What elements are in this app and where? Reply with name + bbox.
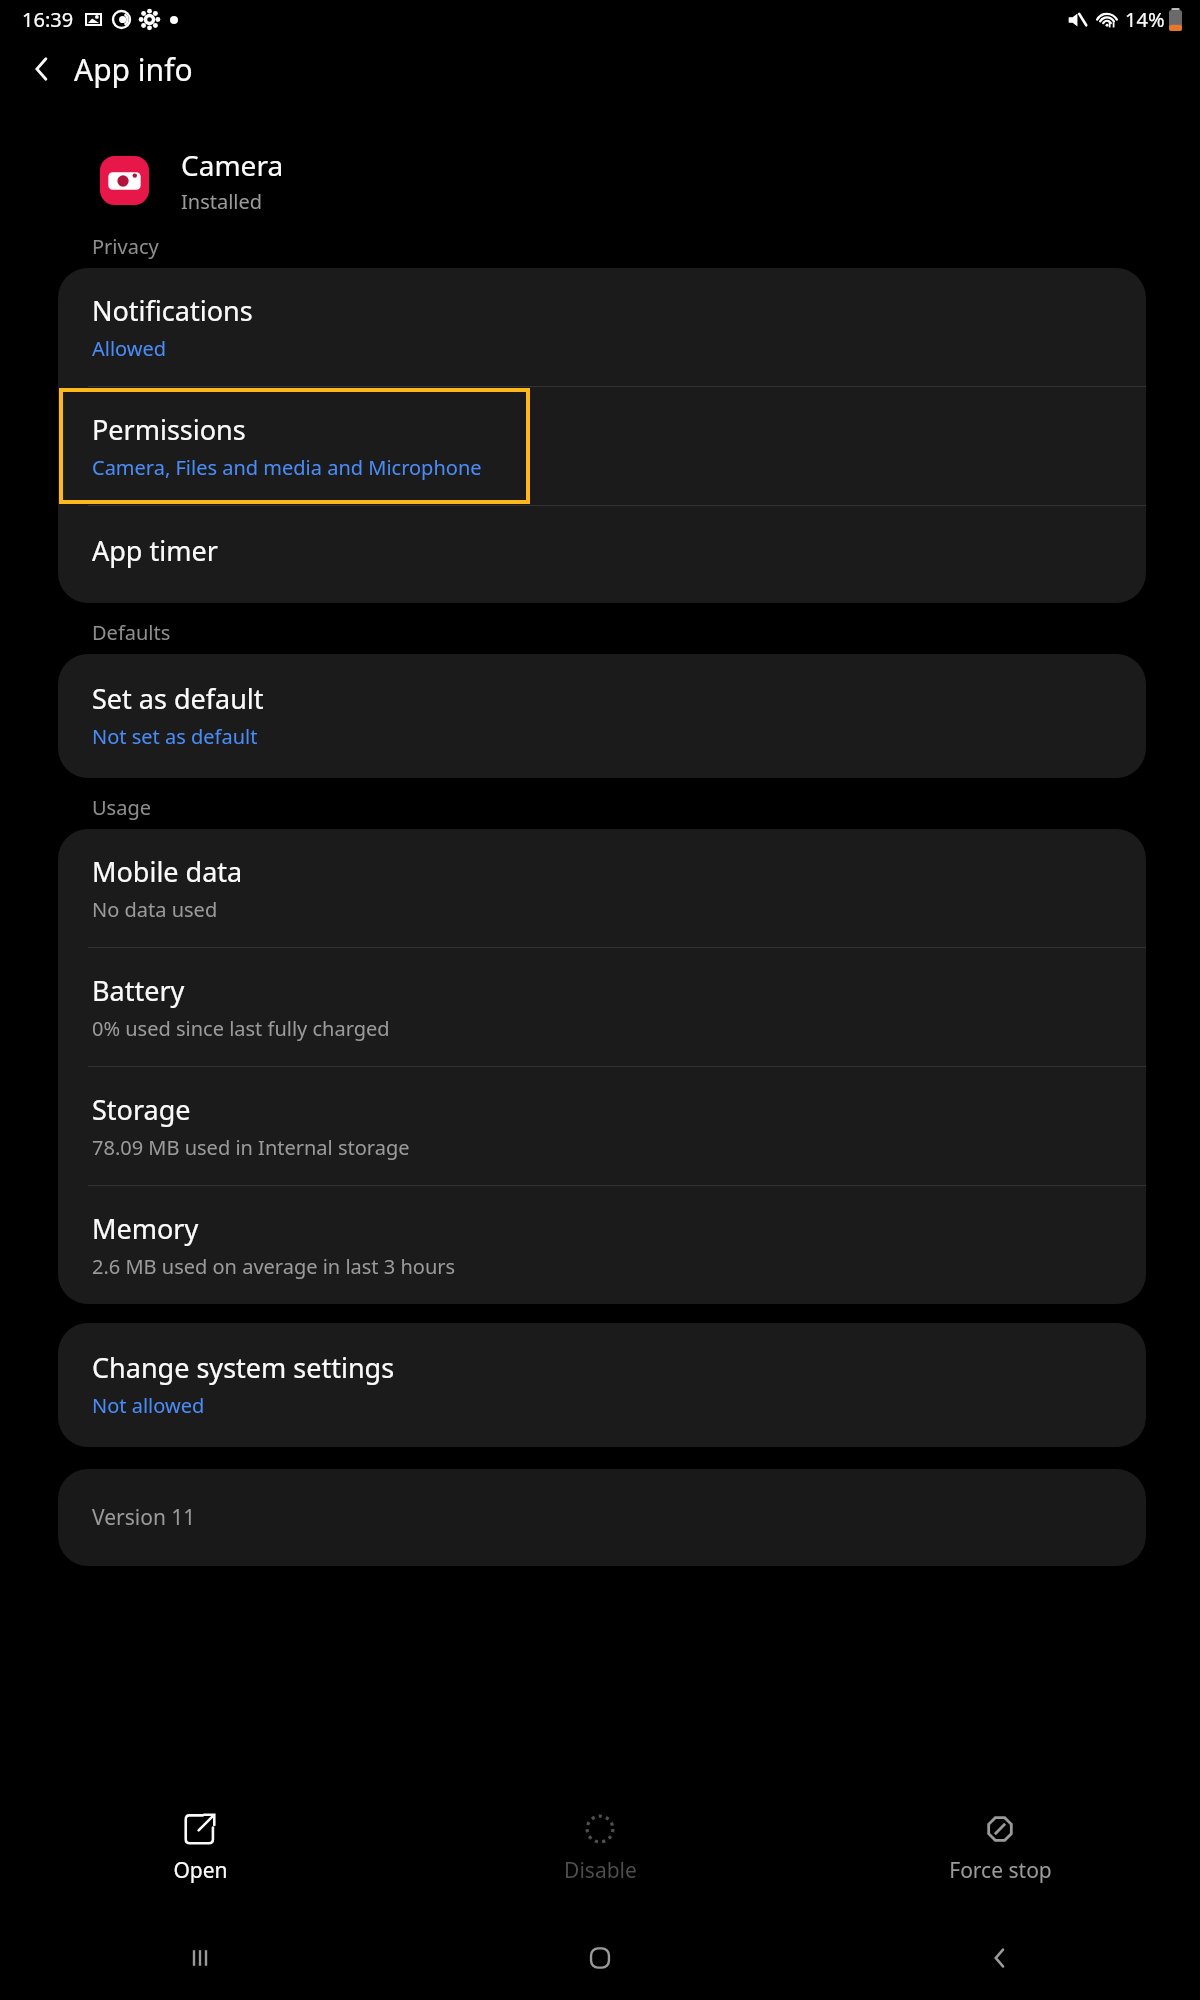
button[interactable]: Back <box>14 41 70 97</box>
button[interactable]: Recent apps <box>0 1916 400 2000</box>
button[interactable]: Permissions <box>58 387 531 505</box>
button[interactable]: Home <box>400 1916 800 2000</box>
staticText: App timer <box>92 532 218 569</box>
button[interactable]: Storage <box>58 1067 1146 1185</box>
staticText: Defaults <box>92 619 171 646</box>
staticText: Set as default <box>92 680 264 717</box>
staticText: Installed <box>181 188 263 215</box>
staticText: Allowed <box>92 335 167 362</box>
staticText: Open <box>173 1856 228 1885</box>
button[interactable]: Notifications <box>58 268 1146 386</box>
staticText: 0% used since last fully charged <box>92 1015 390 1042</box>
button[interactable]: Memory <box>58 1186 1146 1304</box>
staticText: 14% <box>1125 6 1165 33</box>
staticText: Camera, Files and media and Microphone <box>92 454 482 481</box>
staticText: Not set as default <box>92 723 258 750</box>
staticText: Change system settings <box>92 1349 395 1386</box>
staticText: Usage <box>92 794 151 821</box>
staticText: Notifications <box>92 292 253 329</box>
staticText: Not allowed <box>92 1392 205 1419</box>
staticText: Permissions <box>92 411 246 448</box>
staticText: 2.6 MB used on average in last 3 hours <box>92 1253 456 1280</box>
staticText: 78.09 MB used in Internal storage <box>92 1134 410 1161</box>
staticText: 16:39 <box>22 6 74 33</box>
staticText: App info <box>74 49 193 90</box>
staticText: Version 11 <box>92 1503 196 1532</box>
button[interactable]: Set as default <box>58 654 1146 778</box>
button[interactable]: Mobile data <box>58 829 1146 947</box>
staticText: Storage <box>92 1091 191 1128</box>
staticText: Camera <box>181 146 284 184</box>
button[interactable]: Open <box>0 1786 400 1916</box>
staticText: Mobile data <box>92 853 243 890</box>
button[interactable]: Battery <box>58 948 1146 1066</box>
staticText: Force stop <box>949 1856 1052 1885</box>
button[interactable]: Change system settings <box>58 1323 1146 1447</box>
button[interactable]: App timer <box>58 506 1146 603</box>
staticText: Memory <box>92 1210 199 1247</box>
staticText: No data used <box>92 896 218 923</box>
button[interactable]: Disable <box>400 1786 800 1916</box>
button[interactable]: Force stop <box>800 1786 1200 1916</box>
button[interactable]: Back <box>800 1916 1200 2000</box>
staticText: Privacy <box>92 233 159 260</box>
staticText: Disable <box>564 1856 637 1885</box>
staticText: Battery <box>92 972 185 1009</box>
